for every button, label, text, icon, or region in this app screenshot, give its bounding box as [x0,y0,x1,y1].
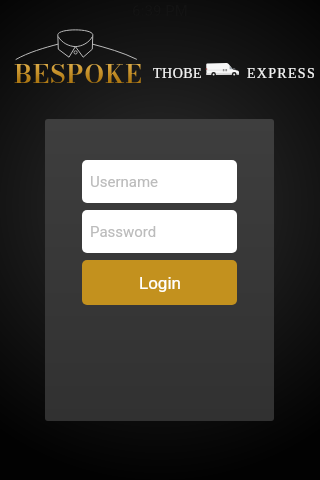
staticText: BESPOKE [14,54,143,94]
button[interactable]: Password [82,210,237,253]
other: Delivery van [206,62,239,78]
staticText: EXPRESS [247,66,317,82]
staticText: Login [139,273,181,293]
staticText: Username [90,173,159,191]
staticText: THOBE [153,66,203,82]
button[interactable]: Username [82,160,237,203]
button[interactable]: Login [82,260,237,305]
staticText: Password [90,223,157,241]
